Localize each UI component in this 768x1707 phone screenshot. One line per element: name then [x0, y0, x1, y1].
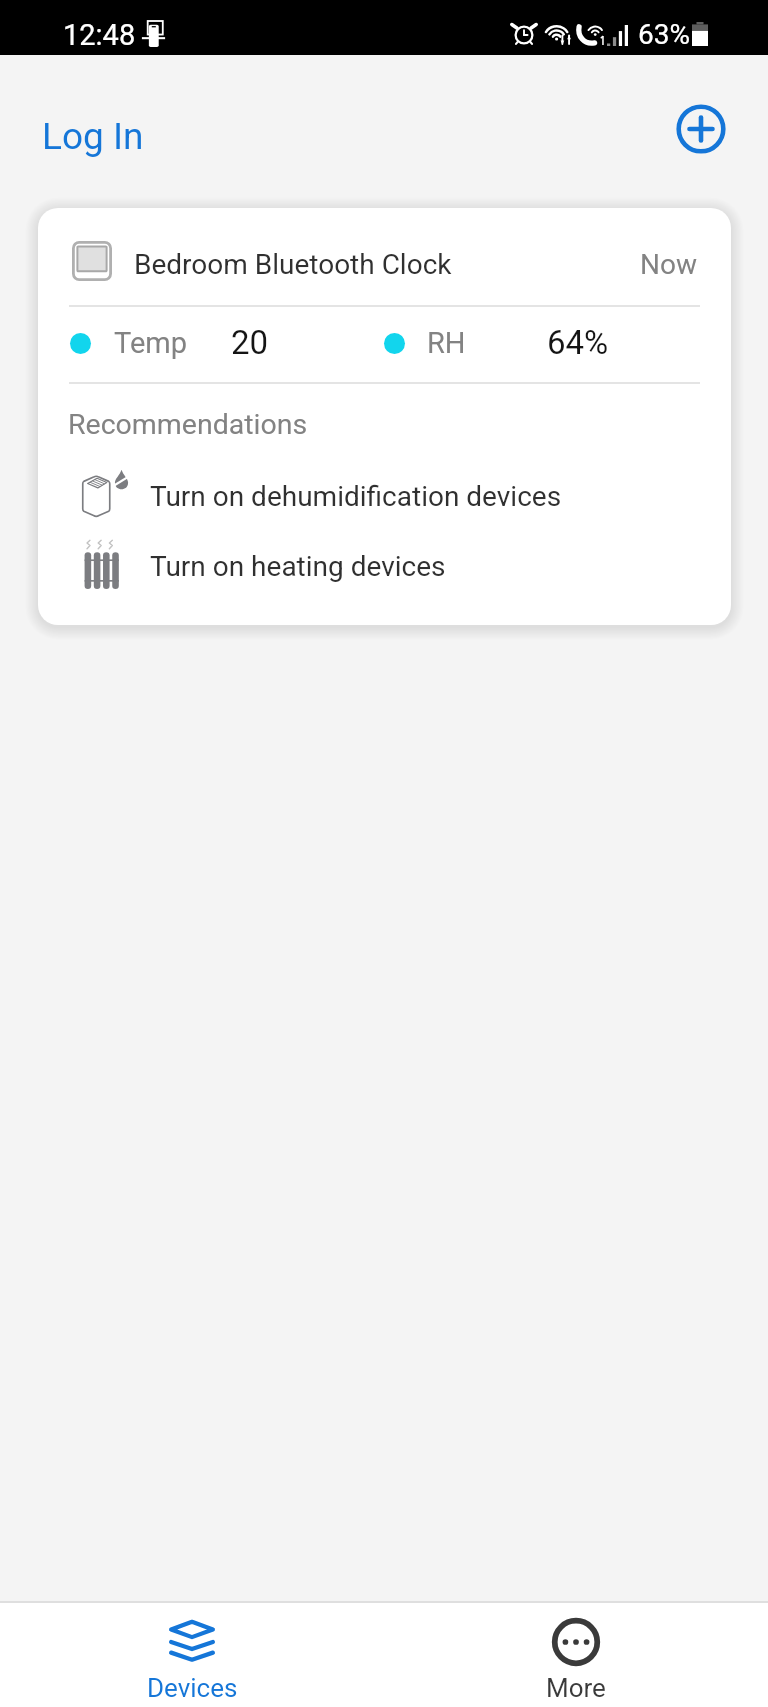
button[interactable]: Turn on heating devices: [69, 535, 700, 597]
button[interactable]: Log In: [27, 109, 159, 164]
staticText: Log In: [42, 115, 144, 158]
staticText: Devices: [147, 1673, 238, 1703]
staticText: RH: [427, 326, 466, 360]
staticText: Recommendations: [68, 408, 308, 441]
staticText: Turn on heating devices: [150, 550, 446, 583]
button[interactable]: Devices: [0, 1603, 384, 1707]
staticText: 63%: [638, 18, 690, 51]
staticText: Turn on dehumidification devices: [150, 480, 562, 513]
staticText: Temp: [114, 326, 187, 360]
staticText: Now: [640, 248, 697, 281]
button[interactable]: Add device: [666, 94, 735, 163]
button[interactable]: Turn on dehumidification devices: [69, 465, 700, 527]
staticText: 64%: [547, 323, 609, 362]
button[interactable]: Bedroom Bluetooth Clock: [38, 208, 731, 625]
staticText: More: [546, 1673, 606, 1703]
staticText: 20: [231, 323, 269, 362]
staticText: Bedroom Bluetooth Clock: [134, 248, 452, 281]
button[interactable]: More: [384, 1603, 768, 1707]
staticText: 12:48: [63, 18, 136, 52]
